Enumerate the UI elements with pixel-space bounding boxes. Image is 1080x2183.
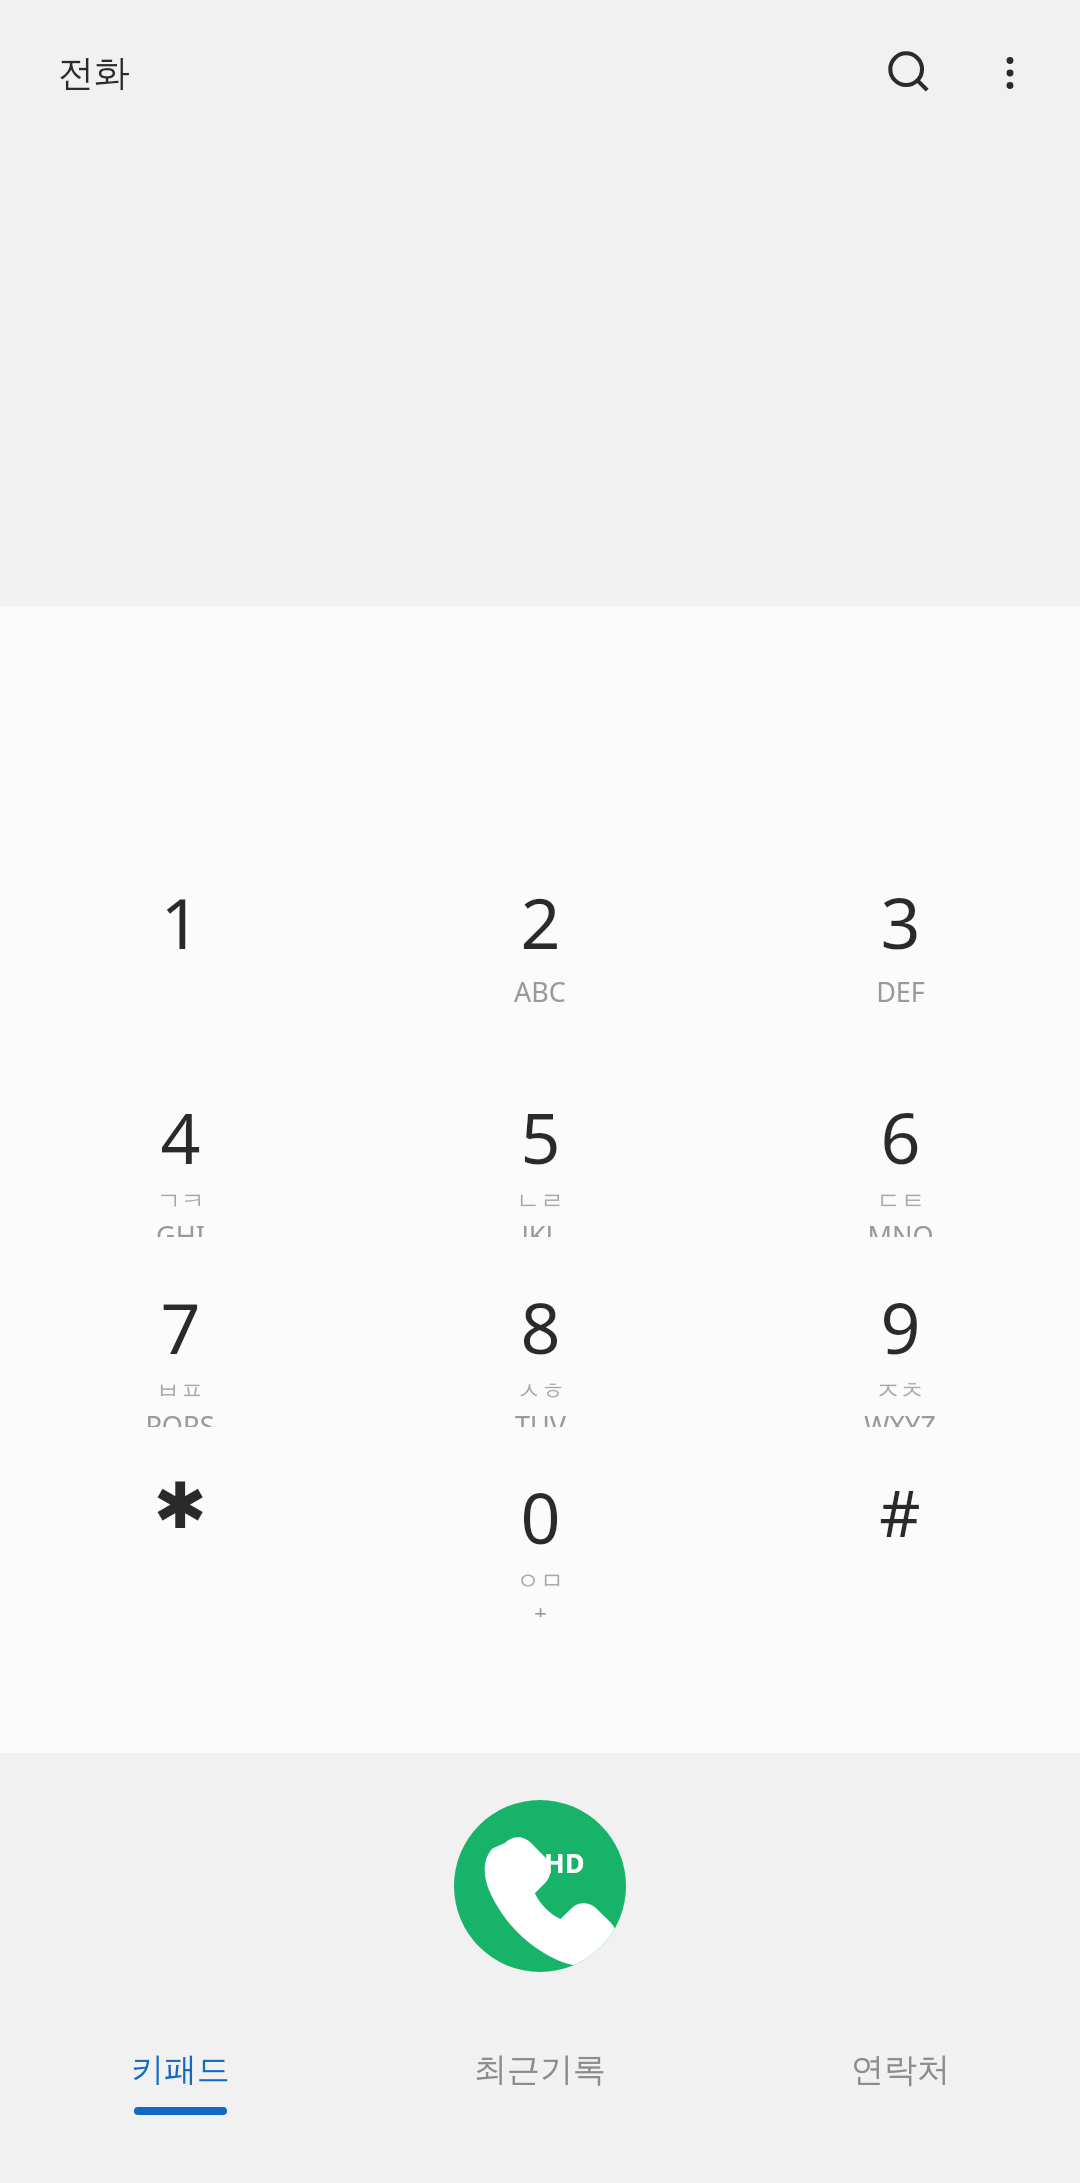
staticText: 전화 <box>58 50 130 95</box>
staticText: ㅇㅁ <box>516 1566 564 1596</box>
staticText: 7 <box>160 1279 201 1374</box>
staticText: 8 <box>520 1279 561 1374</box>
button[interactable]: ✱ <box>0 1469 360 1617</box>
staticText: ㄱㅋ <box>157 1186 205 1216</box>
button[interactable]: 1 <box>0 874 360 1022</box>
staticText: ABC <box>514 973 566 1010</box>
staticText: ㅈㅊ <box>876 1376 924 1406</box>
staticText: GHI <box>156 1217 205 1237</box>
staticText: PQRS <box>145 1407 215 1427</box>
staticText: 최근기록 <box>474 2049 606 2091</box>
staticText: ㄷㅌ <box>877 1186 925 1216</box>
button[interactable]: Call <box>454 1800 626 1972</box>
staticText: ㅅㅎ <box>517 1376 565 1406</box>
button[interactable]: 5 <box>360 1089 720 1237</box>
staticText: 1 <box>160 874 201 969</box>
button[interactable]: # <box>720 1469 1080 1617</box>
staticText: 4 <box>160 1089 201 1184</box>
button[interactable]: 0 <box>360 1469 720 1617</box>
staticText: 5 <box>520 1089 561 1184</box>
staticText: TUV <box>515 1407 566 1427</box>
staticText: JKL <box>521 1217 560 1237</box>
staticText: HD <box>544 1844 585 1881</box>
button[interactable]: 9 <box>720 1279 1080 1427</box>
staticText: # <box>879 1469 921 1556</box>
staticText: WXYZ <box>864 1407 936 1427</box>
staticText: ㅂㅍ <box>156 1376 204 1406</box>
button[interactable]: 6 <box>720 1089 1080 1237</box>
button[interactable]: 7 <box>0 1279 360 1427</box>
staticText: 연락처 <box>851 2049 950 2091</box>
button[interactable]: More options <box>960 23 1060 123</box>
staticText: 6 <box>880 1089 921 1184</box>
staticText: MNO <box>867 1217 934 1237</box>
button[interactable]: 연락처 <box>720 2023 1080 2183</box>
staticText: 키패드 <box>131 2049 230 2091</box>
button[interactable]: 2 <box>360 874 720 1022</box>
staticText: ✱ <box>153 1469 207 1544</box>
button[interactable]: 최근기록 <box>360 2023 720 2183</box>
button[interactable]: 키패드 <box>0 2023 360 2183</box>
staticText: 3 <box>880 874 921 969</box>
staticText: 0 <box>520 1469 561 1564</box>
button[interactable]: Search <box>860 23 960 123</box>
staticText: + <box>534 1597 547 1617</box>
button[interactable]: 4 <box>0 1089 360 1237</box>
staticText: 2 <box>520 874 561 969</box>
staticText: ㄴㄹ <box>516 1186 564 1216</box>
staticText: DEF <box>876 973 925 1010</box>
button[interactable]: 3 <box>720 874 1080 1022</box>
staticText: 9 <box>880 1279 921 1374</box>
button[interactable]: 8 <box>360 1279 720 1427</box>
